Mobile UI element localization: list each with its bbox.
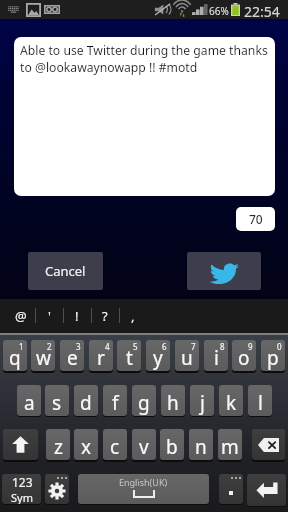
staticText: h (167, 390, 179, 416)
button[interactable]: Space (78, 474, 209, 504)
staticText: 4 (105, 341, 110, 352)
button[interactable]: j (190, 385, 214, 416)
staticText: r (97, 345, 105, 371)
button[interactable]: w (31, 340, 55, 371)
staticText: e (67, 345, 78, 371)
button[interactable]: k (219, 385, 243, 416)
button[interactable]: Backspace (252, 429, 285, 460)
button[interactable]: Able to use Twitter during the game than… (14, 37, 275, 196)
staticText: 2 (47, 341, 52, 352)
button[interactable]: g (132, 385, 156, 416)
staticText: 7 (191, 341, 196, 352)
staticText: 1 (19, 341, 24, 352)
staticText: p (267, 345, 279, 371)
button[interactable]: @ (7, 299, 35, 333)
staticText: i (214, 345, 219, 371)
button[interactable]: t (117, 340, 141, 371)
button[interactable]: n (189, 429, 213, 460)
button[interactable]: Shift (3, 429, 38, 460)
button[interactable]: i (204, 340, 228, 371)
staticText: y (153, 345, 163, 371)
staticText: t (126, 345, 133, 371)
staticText: 22:54 (244, 2, 280, 21)
button[interactable]: b (160, 429, 184, 460)
button[interactable]: c (103, 429, 127, 460)
button[interactable]: m (218, 429, 242, 460)
staticText: f (112, 390, 119, 416)
button[interactable]: Enter (247, 474, 286, 506)
button[interactable]: , (119, 299, 147, 333)
staticText: 0 (277, 341, 282, 352)
staticText: s (52, 390, 62, 416)
button[interactable]: z (46, 429, 70, 460)
button[interactable]: p (261, 340, 285, 371)
button[interactable]: s (45, 385, 69, 416)
button[interactable]: v (132, 429, 156, 460)
staticText: n (195, 434, 207, 460)
staticText: 9 (248, 341, 253, 352)
staticText: 8 (220, 341, 225, 352)
staticText: English(UK) (119, 476, 168, 488)
staticText: ' (48, 307, 51, 325)
button[interactable]: x (74, 429, 98, 460)
button[interactable]: 123 (2, 474, 41, 504)
button[interactable]: d (74, 385, 98, 416)
staticText: 123 (12, 474, 33, 490)
staticText: x (81, 434, 92, 460)
staticText: b (166, 434, 178, 460)
button[interactable]: r (89, 340, 113, 371)
button[interactable]: y (146, 340, 170, 371)
button[interactable]: ! (63, 299, 91, 333)
staticText: q (9, 345, 21, 371)
staticText: 6 (162, 341, 167, 352)
button[interactable]: Cancel (28, 252, 103, 290)
button[interactable]: u (175, 340, 199, 371)
staticText: c (110, 434, 120, 460)
button[interactable]: h (161, 385, 185, 416)
staticText: ? (102, 307, 108, 325)
staticText: m (221, 434, 239, 460)
staticText: Able to use Twitter during the game than… (20, 42, 269, 76)
staticText: v (139, 434, 149, 460)
staticText: l (258, 390, 263, 416)
button[interactable]: ? (91, 299, 119, 333)
staticText: Cancel (45, 262, 86, 280)
staticText: Sym (11, 490, 33, 504)
button[interactable]: e (60, 340, 84, 371)
button[interactable]: Settings (45, 474, 69, 504)
staticText: j (200, 390, 205, 416)
button[interactable]: q (3, 340, 27, 371)
button[interactable]: o (232, 340, 256, 371)
staticText: ! (75, 307, 79, 325)
staticText: @ (15, 307, 27, 325)
staticText: g (138, 390, 150, 416)
button[interactable]: f (103, 385, 127, 416)
button[interactable]: ' (35, 299, 63, 333)
staticText: 3 (76, 341, 81, 352)
staticText: d (80, 390, 92, 416)
button[interactable]: Tweet (187, 252, 261, 290)
staticText: w (36, 345, 51, 371)
staticText: 70 (249, 211, 263, 227)
staticText: , (131, 307, 135, 325)
staticText: u (181, 345, 193, 371)
button[interactable]: Period (219, 474, 243, 504)
staticText: k (226, 390, 237, 416)
staticText: z (54, 434, 63, 460)
button[interactable]: l (248, 385, 272, 416)
staticText: o (238, 345, 250, 371)
staticText: 5 (133, 341, 138, 352)
button[interactable]: a (17, 385, 41, 416)
staticText: a (24, 390, 35, 416)
staticText: 66% (209, 4, 229, 18)
